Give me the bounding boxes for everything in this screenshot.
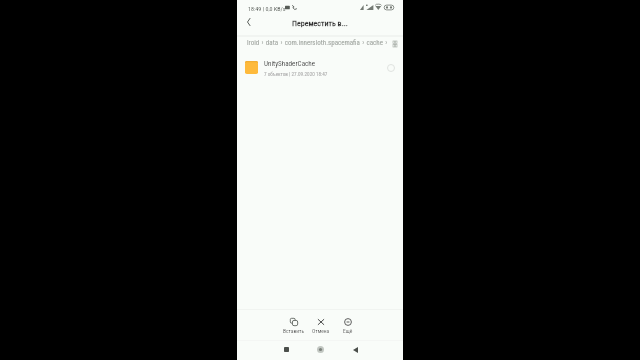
- button[interactable]: Recent apps: [276, 340, 296, 359]
- button[interactable]: Вставить: [280, 311, 308, 337]
- button[interactable]: Back: [240, 14, 256, 30]
- button[interactable]: UnityShaderCache: [237, 53, 403, 81]
- staticText: Вставить: [283, 328, 305, 334]
- button[interactable]: Отмена: [307, 311, 335, 337]
- staticText: 18:49 | 0,0 KB/s: [248, 5, 286, 12]
- staticText: UnityShaderCache: [264, 59, 316, 67]
- button[interactable]: Home: [310, 340, 330, 359]
- staticText: lroid › data › com.innersloth.spacemafia…: [247, 39, 388, 47]
- button[interactable]: Ещё: [334, 311, 362, 337]
- button[interactable]: Back: [345, 340, 365, 359]
- staticText: Отмена: [312, 328, 330, 334]
- staticText: Ещё: [343, 328, 353, 334]
- button[interactable]: Switch view: [389, 38, 401, 50]
- staticText: 7 объектов | 27.09.2020 18:47: [264, 71, 328, 77]
- staticText: Переместить в...: [237, 19, 403, 28]
